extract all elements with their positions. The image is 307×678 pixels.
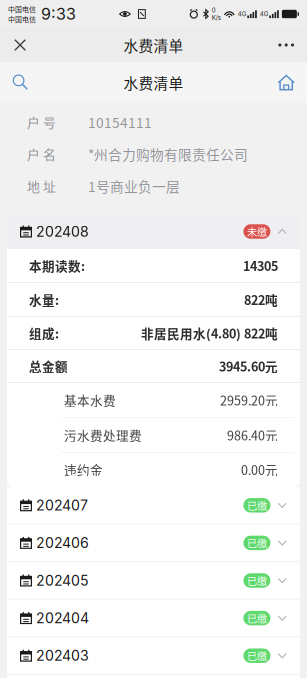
button[interactable]: Home [269,62,303,103]
staticText: 202407 [32,497,88,514]
staticText: 10154111 [88,112,152,132]
staticText: 水量: [29,290,59,308]
staticText: 822吨 [244,290,278,308]
staticText: 总金额 [29,357,68,375]
button[interactable]: 202404 [0,600,307,637]
staticText: 水费清单 [123,72,183,93]
staticText: 202405 [32,572,89,589]
staticText: 9:33 [36,4,76,24]
button[interactable]: More options [268,28,304,62]
button[interactable]: Close [3,28,37,62]
staticText: 污水费处理费 [64,426,142,444]
staticText: 非居民用水(4.80) 822吨 [141,324,278,342]
staticText: 2959.20元 [220,391,278,409]
staticText: 本期读数: [29,256,85,274]
staticText: 986.40元 [227,426,278,444]
staticText: 202403 [32,647,89,664]
button[interactable]: Search [4,62,37,103]
button[interactable]: 202403 [0,637,307,675]
staticText: 202404 [32,609,89,627]
staticText: 已缴 [247,573,267,588]
staticText: 已缴 [247,648,267,663]
staticText: 违约金 [64,460,103,478]
staticText: 4G [238,10,247,18]
staticText: 1号商业负一层 [88,176,180,196]
staticText: 未缴 [247,224,267,239]
staticText: 0.00元 [241,460,278,478]
staticText: 3945.60元 [219,357,278,375]
staticText: 0 K/s [212,7,221,21]
staticText: *州合力购物有限责任公司 [88,144,248,164]
staticText: 中国电信 [8,4,36,14]
staticText: 组成: [29,324,59,342]
staticText: 户 号 [27,113,56,131]
staticText: 地 址 [27,177,56,195]
staticText: 14305 [243,256,278,274]
button[interactable]: 202405 [0,562,307,600]
button[interactable]: 202406 [0,525,307,562]
staticText: 基本水费 [64,391,116,409]
staticText: 4G [260,10,269,18]
staticText: 202408 [32,223,89,240]
staticText: 中国电信 [8,14,36,24]
staticText: 已缴 [247,611,267,625]
staticText: 户 名 [27,145,56,163]
staticText: 已缴 [247,536,267,550]
staticText: 水费清单 [123,34,183,56]
staticText: 已缴 [247,498,267,513]
staticText: 202406 [32,534,89,551]
button[interactable]: 202407 [0,487,307,525]
button[interactable]: 202408 [7,214,300,249]
